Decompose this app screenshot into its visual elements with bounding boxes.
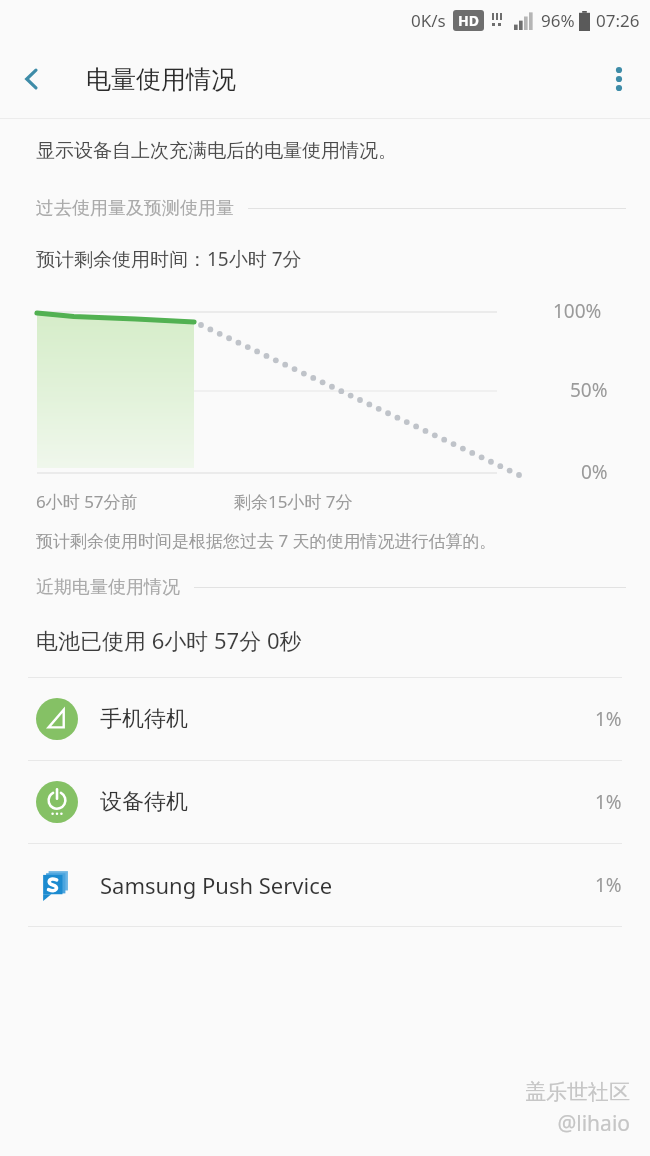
- staticText: 预计剩余使用时间：15小时 7分: [36, 246, 302, 272]
- button[interactable]: 手机待机: [0, 678, 650, 760]
- button[interactable]: 设备待机: [0, 761, 650, 843]
- staticText: HD: [458, 11, 479, 30]
- button[interactable]: More options: [588, 48, 650, 110]
- staticText: 1%: [595, 706, 622, 732]
- staticText: 手机待机: [100, 705, 595, 733]
- staticText: 07:26: [596, 9, 640, 32]
- staticText: 50%: [570, 377, 608, 403]
- staticText: 盖乐世社区: [525, 1079, 630, 1105]
- staticText: 1%: [595, 872, 622, 898]
- staticText: Samsung Push Service: [100, 870, 595, 900]
- button[interactable]: Back: [0, 47, 64, 111]
- staticText: 过去使用量及预测使用量: [36, 197, 234, 220]
- staticText: 设备待机: [100, 788, 595, 816]
- staticText: 0%: [581, 459, 608, 485]
- button[interactable]: Samsung Push Service: [0, 844, 650, 926]
- staticText: 近期电量使用情况: [36, 576, 180, 599]
- staticText: 0K/s: [411, 9, 446, 32]
- staticText: 预计剩余使用时间是根据您过去 7 天的使用情况进行估算的。: [36, 529, 497, 552]
- staticText: 100%: [553, 298, 602, 324]
- staticText: 电量使用情况: [86, 64, 236, 95]
- staticText: 显示设备自上次充满电后的电量使用情况。: [36, 139, 397, 163]
- staticText: 剩余15小时 7分: [234, 490, 353, 513]
- staticText: 6小时 57分前: [36, 490, 138, 513]
- staticText: 1%: [595, 789, 622, 815]
- staticText: 电池已使用 6小时 57分 0秒: [36, 625, 302, 655]
- staticText: 96%: [541, 9, 575, 32]
- staticText: @lihaio: [557, 1109, 630, 1138]
